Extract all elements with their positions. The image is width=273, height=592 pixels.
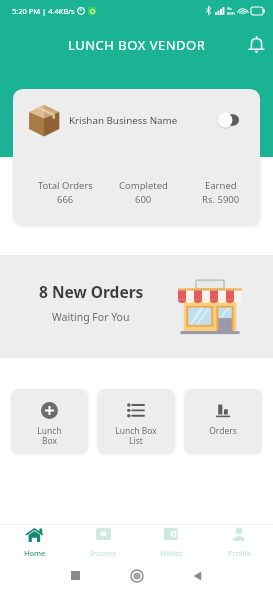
staticText: 600 (135, 193, 152, 206)
button[interactable]: Lunch Box (11, 389, 88, 454)
staticText: LUNCH BOX VENDOR (68, 36, 206, 54)
staticText: Orders (209, 425, 237, 437)
staticText: 8 New Orders (39, 281, 144, 302)
button[interactable]: Toggle availability (217, 112, 239, 128)
button[interactable]: Recents (67, 567, 84, 584)
staticText: Total Orders (38, 179, 93, 192)
button[interactable]: Lunch Box List (97, 389, 175, 454)
staticText: Completed (119, 179, 168, 192)
staticText: Wallet (160, 548, 182, 558)
staticText: Earned (205, 179, 237, 192)
staticText: Lunch Box List (115, 425, 157, 447)
button[interactable]: Home (128, 567, 145, 584)
button[interactable]: Profile (205, 525, 273, 559)
button[interactable]: Notifications (239, 28, 273, 62)
staticText: Profile (228, 548, 251, 558)
staticText: Vo WiFi (227, 6, 235, 16)
staticText: 5:20 PM | 4.4KB/s (12, 6, 75, 16)
staticText: Income (90, 548, 117, 558)
button[interactable]: Back (189, 567, 206, 584)
staticText: Lunch Box (37, 425, 62, 447)
button[interactable]: Wallet (137, 525, 205, 559)
staticText: Krishan Business Name (69, 114, 178, 127)
staticText: Waiting For You (52, 310, 130, 324)
staticText: 666 (57, 193, 74, 206)
staticText: Rs. 5900 (202, 193, 240, 206)
button[interactable]: Orders (184, 389, 262, 454)
button[interactable]: Income (69, 525, 137, 559)
staticText: Home (24, 548, 46, 558)
button[interactable]: Home (0, 525, 69, 559)
